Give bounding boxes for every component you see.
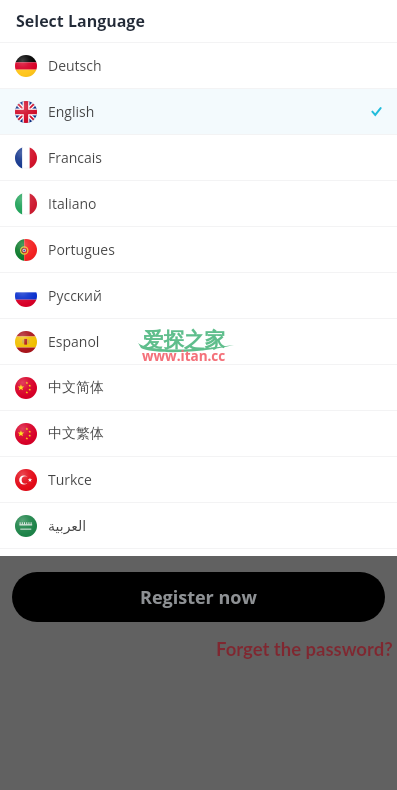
staticText: 中文繁体 bbox=[48, 425, 104, 443]
staticText: Русский bbox=[48, 286, 102, 305]
staticText: www.itan.cc bbox=[142, 347, 226, 365]
other: Selected bbox=[372, 107, 381, 116]
staticText: Deutsch bbox=[48, 56, 102, 75]
button[interactable]: 中文简体 bbox=[0, 365, 397, 410]
staticText: Select Language bbox=[16, 10, 145, 32]
button[interactable]: Espanol bbox=[0, 319, 397, 364]
staticText: Italiano bbox=[48, 194, 97, 213]
button[interactable]: Deutsch bbox=[0, 43, 397, 88]
staticText: Portugues bbox=[48, 240, 115, 259]
button[interactable]: Portugues bbox=[0, 227, 397, 272]
staticText: Turkce bbox=[48, 470, 92, 489]
button[interactable]: English bbox=[0, 89, 397, 134]
button[interactable]: 中文繁体 bbox=[0, 411, 397, 456]
button[interactable]: Forget the password? bbox=[216, 638, 397, 660]
staticText: 中文简体 bbox=[48, 379, 104, 397]
button[interactable]: Русский bbox=[0, 273, 397, 318]
staticText: العربية bbox=[48, 518, 87, 534]
staticText: Register now bbox=[140, 585, 257, 610]
staticText: English bbox=[48, 102, 95, 121]
button[interactable]: Register now bbox=[12, 572, 385, 622]
button[interactable]: Italiano bbox=[0, 181, 397, 226]
staticText: Espanol bbox=[48, 332, 100, 351]
staticText: Francais bbox=[48, 148, 103, 167]
button[interactable]: Turkce bbox=[0, 457, 397, 502]
button[interactable]: العربية bbox=[0, 503, 397, 548]
staticText: 爱探之家 bbox=[143, 327, 225, 353]
button[interactable]: Francais bbox=[0, 135, 397, 180]
